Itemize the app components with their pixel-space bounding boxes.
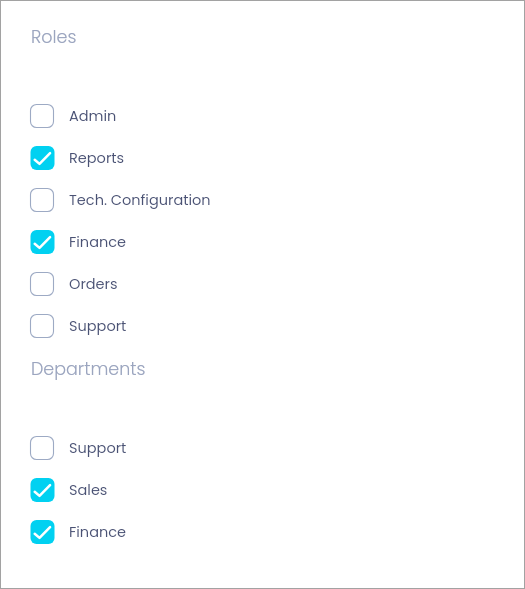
staticText: Support — [69, 316, 127, 336]
staticText: Tech. Configuration — [69, 190, 211, 210]
staticText: Departments — [31, 357, 146, 382]
button[interactable]: Reports — [0, 146, 525, 170]
button[interactable]: Orders — [0, 272, 525, 296]
staticText: Finance — [69, 522, 127, 542]
button[interactable]: Finance — [0, 520, 525, 544]
staticText: Support — [69, 438, 127, 458]
button[interactable]: Finance — [0, 230, 525, 254]
button[interactable]: Tech. Configuration — [0, 188, 525, 212]
staticText: Admin — [69, 106, 117, 126]
staticText: Sales — [69, 480, 108, 500]
staticText: Finance — [69, 232, 127, 252]
button[interactable]: Admin — [0, 104, 525, 128]
staticText: Orders — [69, 274, 118, 294]
staticText: Roles — [31, 25, 77, 50]
button[interactable]: Sales — [0, 478, 525, 502]
button[interactable]: Support — [0, 436, 525, 460]
button[interactable]: Support — [0, 314, 525, 338]
staticText: Reports — [69, 148, 125, 168]
